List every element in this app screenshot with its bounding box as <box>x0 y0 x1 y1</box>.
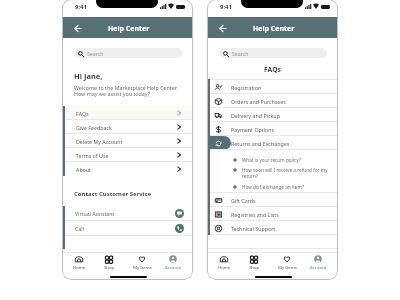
button[interactable]: Shop <box>240 255 268 270</box>
staticText: About <box>76 166 177 173</box>
button[interactable]: Account <box>304 255 332 270</box>
staticText: Help Center <box>108 24 150 34</box>
button[interactable]: Virtual Assistant <box>65 206 193 220</box>
button[interactable]: Give Feedback <box>65 120 193 134</box>
button[interactable]: My Items <box>273 255 301 270</box>
button[interactable]: Returns and Exchanges <box>210 136 338 150</box>
button[interactable]: Registration <box>210 80 338 94</box>
staticText: Shop <box>104 264 115 270</box>
button[interactable]: Account <box>159 255 187 270</box>
button[interactable]: Delete My Account <box>65 134 193 148</box>
button[interactable]: Shop <box>95 255 123 270</box>
staticText: 9:41 <box>220 3 232 11</box>
staticText: Virtual Assistant <box>75 210 175 217</box>
staticText: My Items <box>278 264 297 270</box>
staticText: Shop <box>249 264 260 270</box>
staticText: How do I exchange an item? <box>242 184 304 190</box>
staticText: Delete My Account <box>76 138 177 145</box>
button[interactable]: Technical Support <box>210 221 338 235</box>
button[interactable]: Gift Cards <box>210 193 338 207</box>
staticText: Delivery and Pickup <box>231 112 280 119</box>
button[interactable]: About <box>65 162 193 176</box>
staticText: Orders and Purchases <box>231 98 286 105</box>
button[interactable]: Orders and Purchases <box>210 94 338 108</box>
staticText: How soon will I receive a refund for my … <box>242 167 328 180</box>
staticText: My Items <box>133 264 152 270</box>
button[interactable]: Call <box>65 221 193 235</box>
staticText: Welcome to the Marketplace Help Center. … <box>74 84 178 98</box>
button[interactable]: What is your return policy? <box>210 155 338 165</box>
staticText: Registries and Lists <box>231 211 279 218</box>
staticText: Home <box>218 264 231 270</box>
button[interactable]: How soon will I receive a refund for my … <box>210 165 338 182</box>
button[interactable]: Home <box>210 255 238 270</box>
staticText: Returns and Exchanges <box>231 140 290 147</box>
button[interactable]: Back <box>216 22 228 34</box>
button[interactable]: Home <box>65 255 93 270</box>
button[interactable]: Registries and Lists <box>210 207 338 221</box>
staticText: Gift Cards <box>231 197 256 204</box>
button[interactable]: Terms of Use <box>65 148 193 162</box>
staticText: 9:41 <box>75 3 87 11</box>
staticText: FAQs <box>264 65 281 74</box>
button[interactable]: Delivery and Pickup <box>210 108 338 122</box>
staticText: Payment Options <box>231 126 275 133</box>
button[interactable]: How do I exchange an item? <box>210 182 338 192</box>
staticText: Help Center <box>253 24 295 34</box>
button[interactable]: FAQs <box>65 106 193 120</box>
staticText: What is your return policy? <box>242 157 301 163</box>
button[interactable]: Payment Options <box>210 122 338 136</box>
button[interactable]: Search <box>219 48 327 58</box>
staticText: Account <box>165 264 182 270</box>
button[interactable]: Search <box>74 48 182 58</box>
staticText: Hi Jane, <box>74 71 103 81</box>
staticText: Home <box>73 264 86 270</box>
staticText: Search <box>87 50 104 57</box>
staticText: FAQs <box>76 110 177 117</box>
staticText: Account <box>310 264 327 270</box>
staticText: Search <box>232 50 249 57</box>
button[interactable]: Back <box>71 22 83 34</box>
staticText: Contact Customer Service <box>74 190 152 198</box>
staticText: Call <box>75 225 175 232</box>
staticText: Technical Support <box>231 225 276 232</box>
staticText: Terms of Use <box>76 152 177 159</box>
staticText: Give Feedback <box>76 124 177 131</box>
staticText: Registration <box>231 84 262 91</box>
button[interactable]: My Items <box>128 255 156 270</box>
